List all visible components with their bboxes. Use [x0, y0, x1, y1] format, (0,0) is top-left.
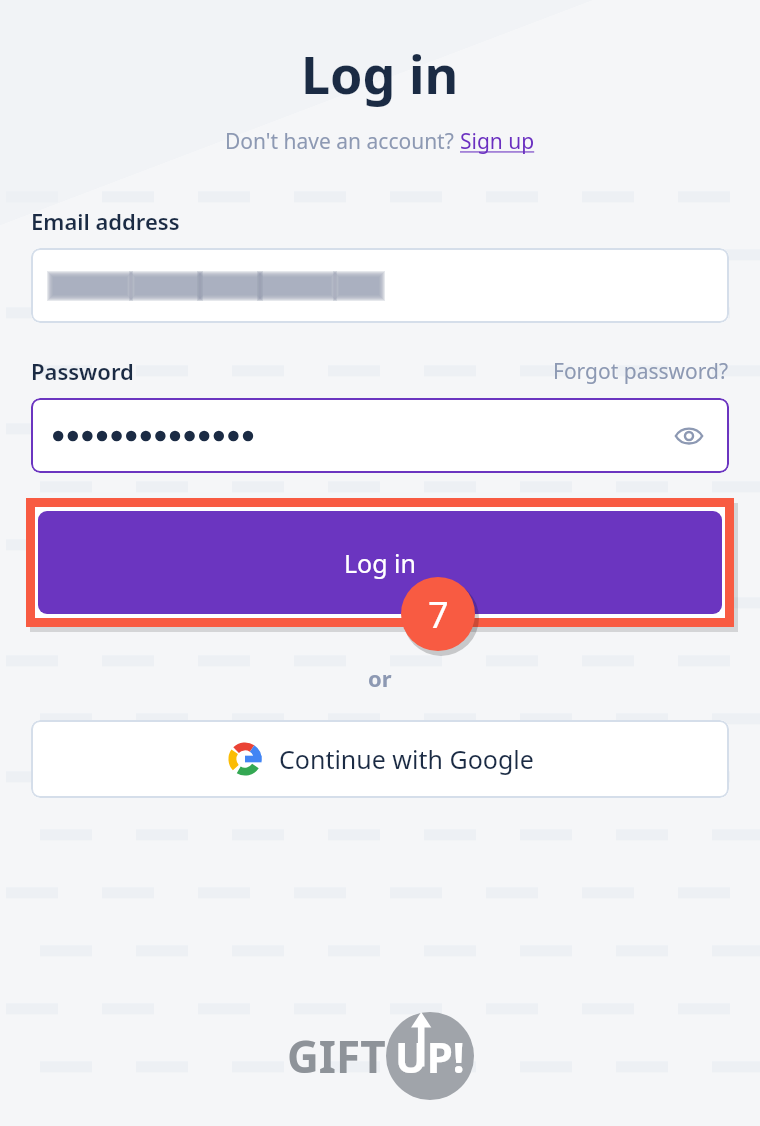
- button[interactable]: Show password: [31, 398, 729, 473]
- staticText: Forgot password?: [553, 357, 729, 386]
- staticText: Continue with Google: [279, 742, 534, 776]
- button[interactable]: Sign up: [460, 127, 535, 156]
- staticText: GIFT: [287, 1026, 386, 1086]
- staticText: Email address: [31, 206, 180, 236]
- staticText: or: [368, 663, 392, 693]
- staticText: Log in: [301, 38, 459, 109]
- staticText: Sign up: [460, 127, 535, 156]
- button[interactable]: Log in: [38, 511, 722, 614]
- button[interactable]: Forgot password?: [553, 357, 729, 386]
- button[interactable]: [31, 248, 729, 323]
- staticText: Don't have an account?: [225, 127, 460, 156]
- button[interactable]: Show password: [667, 414, 711, 458]
- staticText: Log in: [344, 546, 417, 580]
- staticText: Password: [31, 356, 134, 386]
- staticText: 7: [428, 590, 449, 639]
- button[interactable]: Continue with Google: [31, 720, 729, 798]
- staticText: UP!: [395, 1028, 465, 1085]
